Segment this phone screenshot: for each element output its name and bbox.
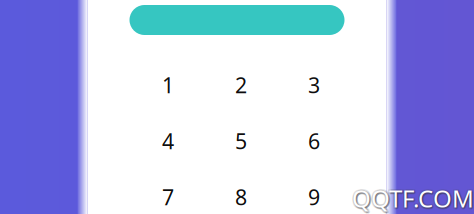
staticText: 1 <box>162 71 174 99</box>
button[interactable]: Amount field <box>129 5 344 35</box>
staticText: QQTF.COM <box>354 182 474 214</box>
staticText: QQTF.COM <box>354 183 474 214</box>
button[interactable]: 3 <box>277 57 350 113</box>
button[interactable]: 8 <box>204 169 277 214</box>
button[interactable]: 7 <box>131 169 204 214</box>
staticText: 5 <box>235 127 247 155</box>
staticText: QQTF.COM <box>352 184 474 214</box>
staticText: QQTF.COM <box>352 182 474 214</box>
staticText: 9 <box>308 183 320 211</box>
staticText: 7 <box>162 183 174 211</box>
button[interactable]: 9 <box>277 169 350 214</box>
button[interactable]: 1 <box>131 57 204 113</box>
button[interactable]: 5 <box>204 113 277 169</box>
staticText: 2 <box>235 71 247 99</box>
staticText: 3 <box>308 71 320 99</box>
button[interactable]: 4 <box>131 113 204 169</box>
staticText: 8 <box>235 183 247 211</box>
staticText: QQTF.COM <box>354 184 474 214</box>
staticText: QQTF.COM <box>351 181 473 213</box>
staticText: QQTF.COM <box>353 181 474 213</box>
button[interactable]: 2 <box>204 57 277 113</box>
staticText: 4 <box>162 127 174 155</box>
staticText: QQTF.COM <box>353 184 474 214</box>
staticText: QQTF.COM <box>351 183 473 214</box>
button[interactable]: 6 <box>277 113 350 169</box>
staticText: 6 <box>308 127 320 155</box>
